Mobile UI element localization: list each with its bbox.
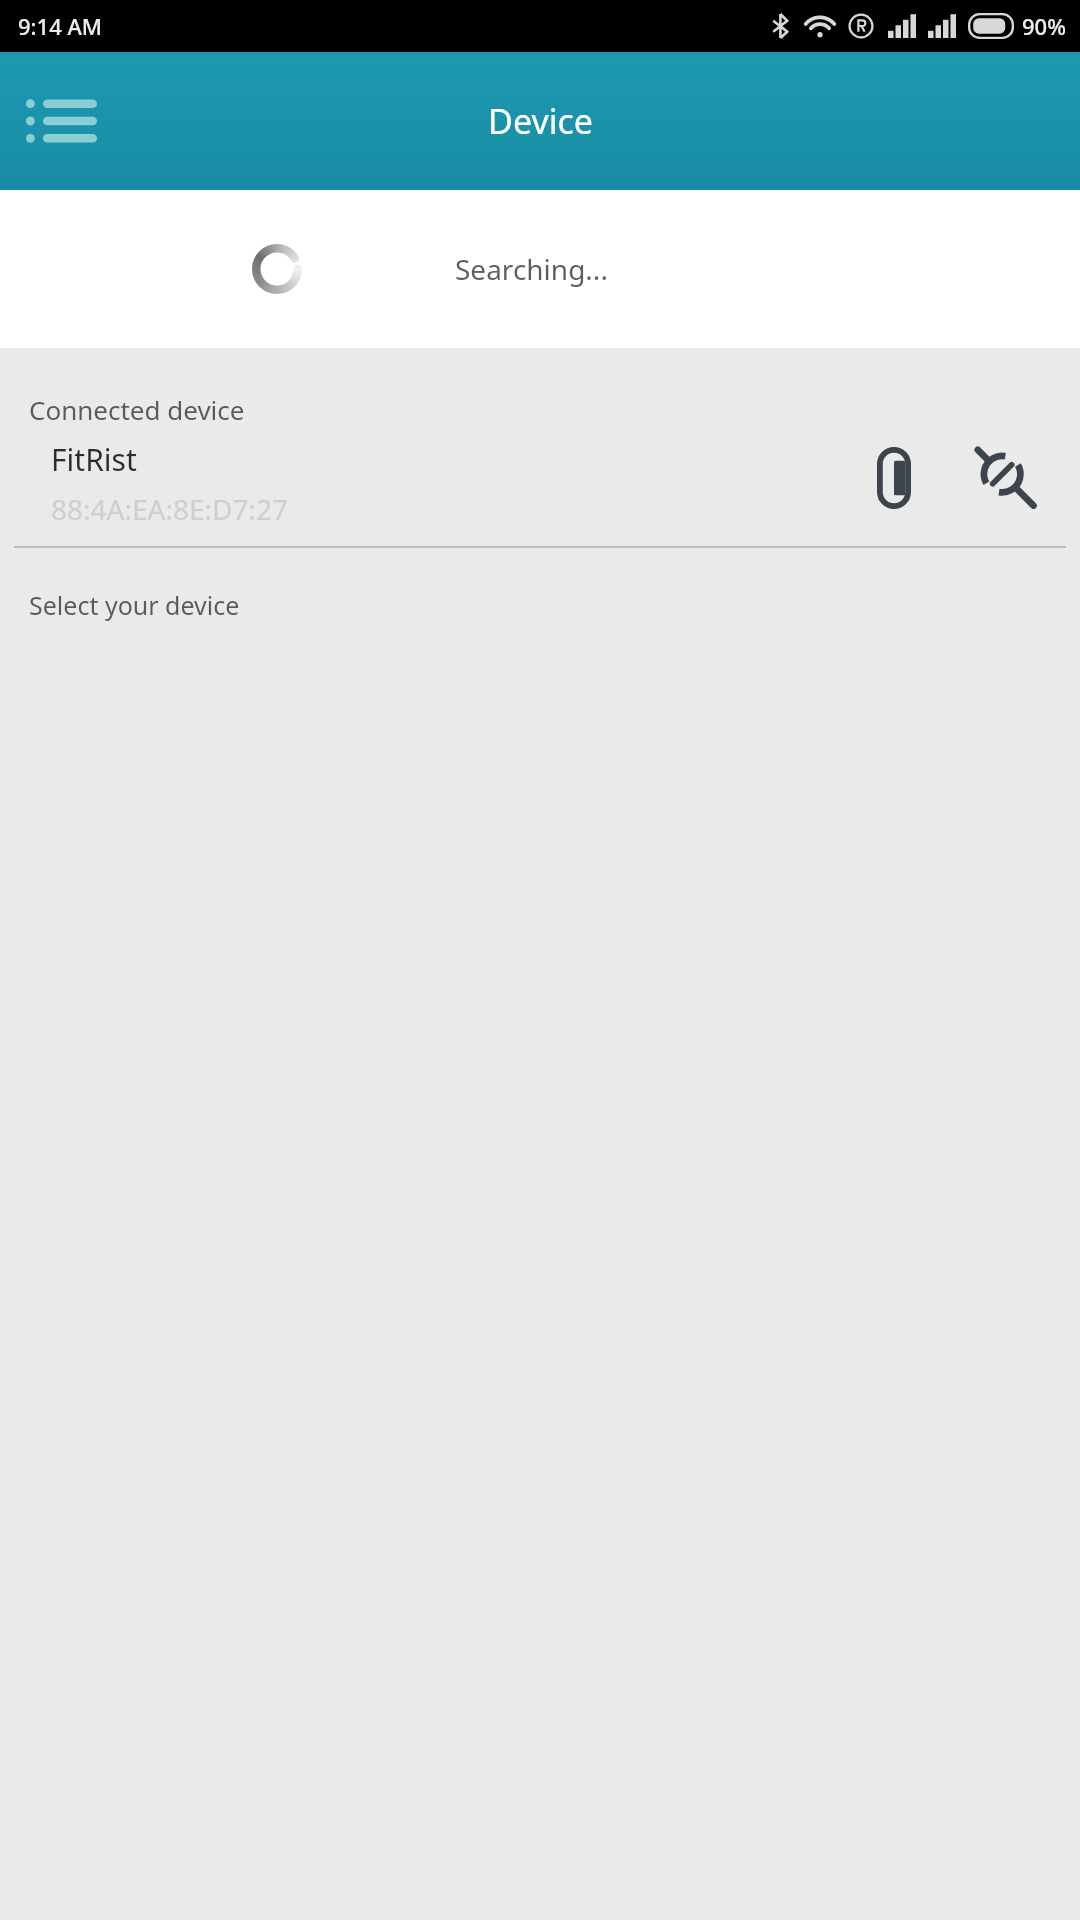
staticText: Device	[488, 98, 593, 144]
staticText: 9:14 AM	[18, 11, 103, 41]
button[interactable]: FitRist	[0, 427, 1080, 528]
staticText: 90%	[1022, 11, 1066, 41]
staticText: Searching...	[455, 250, 608, 288]
button[interactable]: Menu	[10, 71, 110, 171]
staticText: Connected device	[29, 392, 245, 427]
staticText: FitRist	[51, 439, 137, 480]
button[interactable]: Stop searching	[956, 428, 1056, 528]
staticText: 88:4A:EA:8E:D7:27	[51, 490, 288, 528]
staticText: Select your device	[29, 588, 240, 622]
button[interactable]: Device band	[844, 428, 944, 528]
